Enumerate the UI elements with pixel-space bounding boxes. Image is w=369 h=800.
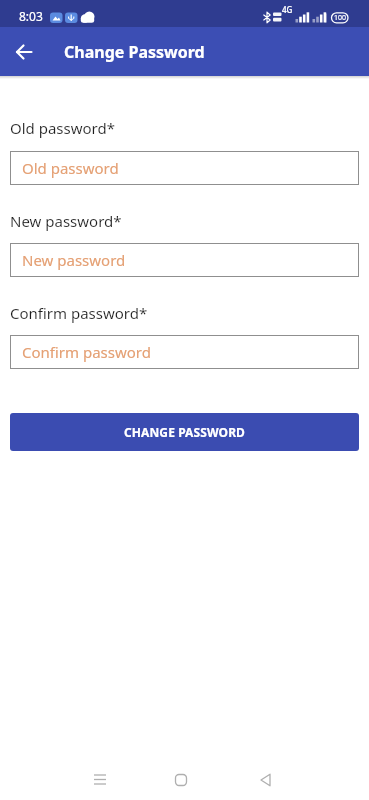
staticText: 8:03 xyxy=(19,8,43,24)
button[interactable]: CHANGE PASSWORD xyxy=(10,413,359,451)
staticText: Confirm password xyxy=(22,342,151,362)
staticText: Confirm password* xyxy=(10,303,148,323)
staticText: 100 xyxy=(334,13,347,23)
button[interactable]: Old password xyxy=(10,151,359,185)
button[interactable] xyxy=(169,768,193,792)
staticText: Old password xyxy=(22,158,119,178)
button[interactable] xyxy=(88,768,112,792)
staticText: Change Password xyxy=(64,41,205,63)
button[interactable]: New password xyxy=(10,243,359,277)
button[interactable] xyxy=(8,35,42,69)
button[interactable] xyxy=(254,768,278,792)
button[interactable]: Confirm password xyxy=(10,335,359,369)
staticText: New password* xyxy=(10,211,122,231)
staticText: New password xyxy=(22,250,126,270)
staticText: Old password* xyxy=(10,118,115,138)
staticText: 4G xyxy=(282,4,293,15)
staticText: CHANGE PASSWORD xyxy=(124,424,245,440)
